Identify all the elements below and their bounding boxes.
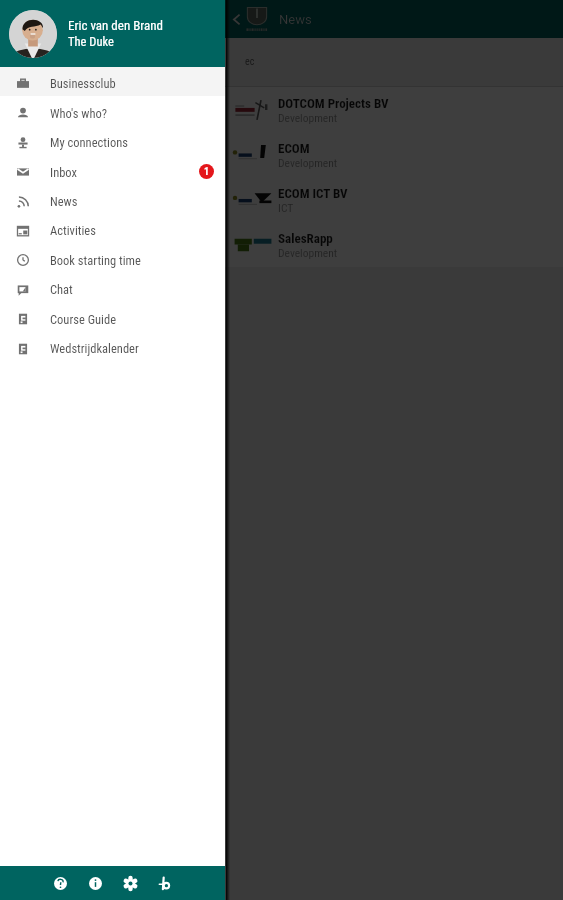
button[interactable]: News — [0, 185, 225, 214]
staticText: Inbox — [50, 165, 77, 180]
staticText: ECOM ICT BV — [278, 186, 348, 201]
button[interactable]: Brand — [153, 871, 177, 895]
staticText: Development — [278, 111, 338, 124]
button[interactable]: SalesRapp — [0, 222, 563, 267]
button[interactable]: Profile photo — [9, 10, 57, 58]
button[interactable]: Businessclub — [0, 67, 225, 96]
staticText: News — [50, 194, 78, 209]
button[interactable]: Chat — [0, 273, 225, 302]
staticText: 1 — [204, 166, 210, 178]
staticText: News — [279, 12, 312, 27]
staticText: Activities — [50, 223, 96, 238]
staticText: Businessclub — [50, 76, 116, 91]
staticText: Wedstrijdkalender — [50, 341, 139, 356]
button[interactable]: Who's who? — [0, 96, 225, 126]
button[interactable]: Activities — [0, 214, 225, 243]
button[interactable]: Book starting time — [0, 243, 225, 273]
staticText: My connections — [50, 135, 128, 150]
staticText: Chat — [50, 282, 73, 297]
staticText: Development — [278, 156, 338, 169]
staticText: ECOM — [278, 141, 310, 156]
button[interactable]: Wedstrijdkalender — [0, 332, 225, 361]
button[interactable]: Inbox — [0, 155, 225, 185]
staticText: SalesRapp — [278, 231, 333, 246]
staticText: The Duke — [68, 34, 114, 49]
staticText: Course Guide — [50, 312, 116, 327]
button[interactable]: Settings — [118, 871, 142, 895]
button[interactable]: DOTCOM Projects BV — [0, 87, 563, 132]
button[interactable]: Back — [228, 11, 244, 27]
staticText: Development — [278, 246, 338, 259]
button[interactable]: Info — [83, 871, 107, 895]
button[interactable]: My connections — [0, 126, 225, 155]
staticText: Book starting time — [50, 253, 141, 268]
button[interactable]: ECOM ICT BV — [0, 177, 563, 222]
button[interactable]: ECOM — [0, 132, 563, 177]
button[interactable]: Course Guide — [0, 302, 225, 332]
staticText: Eric van den Brand — [68, 18, 163, 33]
button[interactable]: Help — [48, 871, 72, 895]
staticText: ec — [245, 56, 255, 68]
staticText: ICT — [278, 201, 294, 214]
staticText: Who's who? — [50, 106, 107, 121]
staticText: DOTCOM Projects BV — [278, 96, 389, 111]
